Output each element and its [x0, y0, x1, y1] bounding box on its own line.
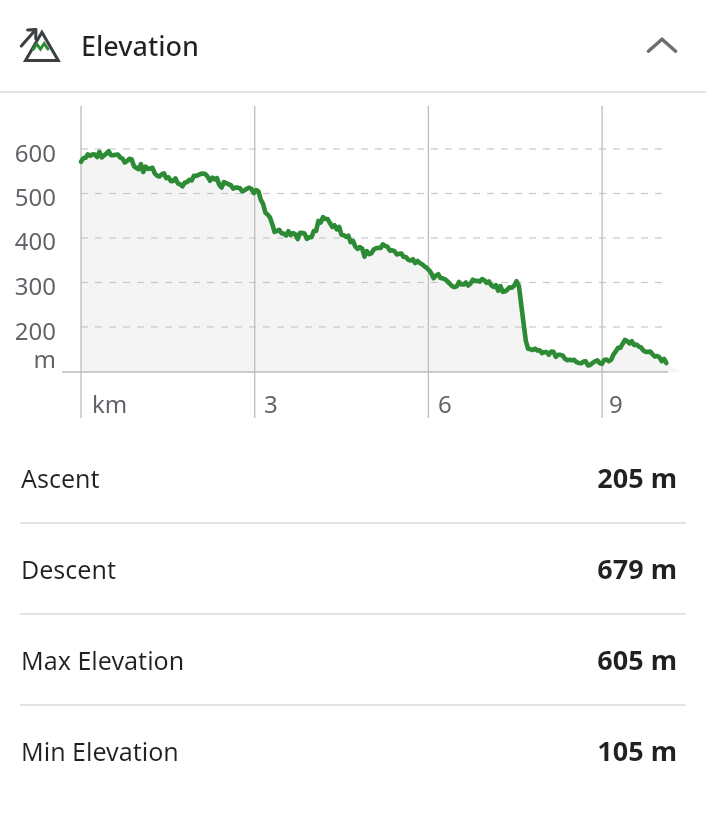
staticText: 600 [0, 136, 56, 169]
staticText: 605 m [597, 641, 677, 678]
staticText: 9 [609, 387, 623, 420]
staticText: 500 [0, 180, 56, 213]
staticText: Elevation [81, 27, 200, 64]
staticText: Min Elevation [21, 734, 179, 768]
staticText: 205 m [597, 459, 677, 496]
staticText: km [92, 387, 128, 420]
button[interactable]: Ascent [0, 433, 706, 522]
staticText: 3 [264, 387, 278, 420]
button[interactable]: Max Elevation [0, 615, 706, 704]
staticText: 400 [0, 224, 56, 257]
button[interactable]: Min Elevation [0, 706, 706, 795]
staticText: Max Elevation [21, 643, 185, 677]
button[interactable]: Elevation [0, 0, 706, 91]
staticText: m [0, 342, 56, 375]
staticText: 679 m [597, 550, 677, 587]
staticText: 200 [0, 314, 56, 347]
staticText: 300 [0, 269, 56, 302]
staticText: 105 m [597, 732, 677, 769]
other: Collapse Elevation section [642, 26, 682, 66]
button[interactable]: Descent [0, 524, 706, 613]
staticText: Descent [21, 552, 116, 586]
staticText: 6 [438, 387, 452, 420]
staticText: Ascent [21, 461, 100, 495]
